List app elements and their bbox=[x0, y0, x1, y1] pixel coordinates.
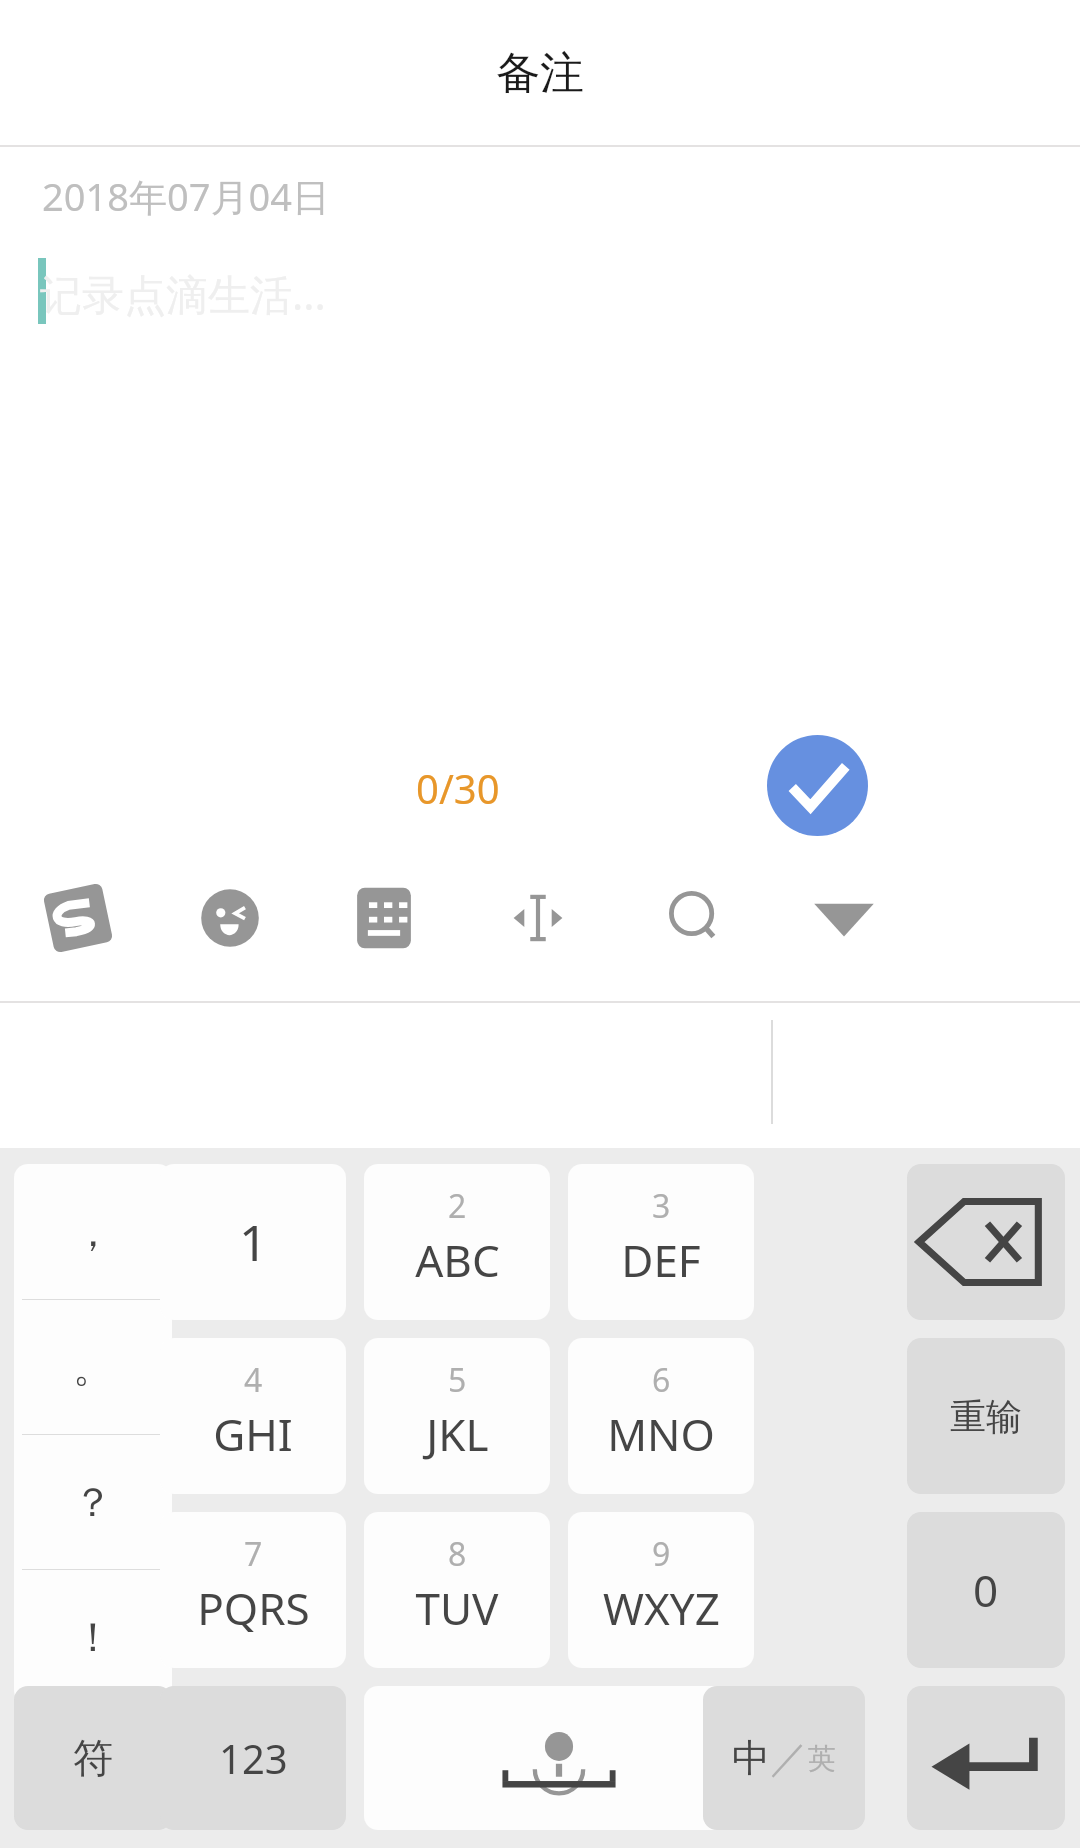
button[interactable]: Punctuation bbox=[14, 1164, 172, 1704]
staticText: 9 bbox=[652, 1532, 671, 1576]
button[interactable]: Space bbox=[364, 1686, 754, 1830]
staticText: JKL bbox=[426, 1404, 489, 1464]
button[interactable]: GHI bbox=[160, 1338, 346, 1494]
staticText: 记录点滴生活... bbox=[40, 265, 326, 322]
button[interactable]: Sogou input bbox=[30, 870, 126, 966]
staticText: 中 bbox=[732, 1734, 770, 1782]
staticText: TUV bbox=[415, 1578, 499, 1638]
staticText: DEF bbox=[621, 1230, 701, 1290]
staticText: ！ bbox=[73, 1612, 113, 1662]
staticText: 符 bbox=[73, 1733, 113, 1783]
staticText: ／ bbox=[770, 1734, 808, 1782]
staticText: 0/30 bbox=[416, 761, 500, 815]
button[interactable]: DEF bbox=[568, 1164, 754, 1320]
button[interactable]: Re-enter bbox=[907, 1338, 1065, 1494]
button[interactable]: Move cursor bbox=[490, 870, 586, 966]
staticText: GHI bbox=[213, 1404, 293, 1464]
staticText: ABC bbox=[415, 1230, 500, 1290]
button[interactable]: MNO bbox=[568, 1338, 754, 1494]
staticText: 7 bbox=[244, 1532, 263, 1576]
staticText: ， bbox=[73, 1207, 113, 1257]
button[interactable]: Search bbox=[646, 870, 742, 966]
button[interactable]: Chinese English bbox=[703, 1686, 865, 1830]
staticText: 。 bbox=[73, 1342, 113, 1392]
button[interactable]: Emoji bbox=[182, 870, 278, 966]
button[interactable]: Confirm bbox=[767, 735, 868, 836]
staticText: WXYZ bbox=[603, 1578, 720, 1638]
button[interactable]: TUV bbox=[364, 1512, 550, 1668]
button[interactable]: Delete bbox=[907, 1164, 1065, 1320]
staticText: 5 bbox=[448, 1358, 467, 1402]
button[interactable]: Hide keyboard bbox=[796, 870, 892, 966]
staticText: 123 bbox=[219, 1731, 288, 1785]
staticText: 0 bbox=[973, 1560, 999, 1620]
staticText: 8 bbox=[448, 1532, 467, 1576]
staticText: 2 bbox=[448, 1184, 467, 1228]
button[interactable]: WXYZ bbox=[568, 1512, 754, 1668]
staticText: 1 bbox=[239, 1208, 268, 1276]
button[interactable]: Enter bbox=[907, 1686, 1065, 1830]
staticText: 4 bbox=[244, 1358, 263, 1402]
button[interactable]: JKL bbox=[364, 1338, 550, 1494]
staticText: 2018年07月04日 bbox=[42, 170, 330, 222]
button[interactable]: ABC bbox=[364, 1164, 550, 1320]
staticText: PQRS bbox=[197, 1578, 310, 1638]
staticText: MNO bbox=[607, 1404, 715, 1464]
button[interactable]: 1 bbox=[160, 1164, 346, 1320]
button[interactable]: Numbers bbox=[160, 1686, 346, 1830]
button[interactable]: Symbols bbox=[14, 1686, 172, 1830]
staticText: 英 bbox=[808, 1741, 836, 1776]
staticText: 6 bbox=[652, 1358, 671, 1402]
button[interactable]: Switch keyboard bbox=[336, 870, 432, 966]
staticText: 重输 bbox=[950, 1394, 1022, 1439]
staticText: 3 bbox=[652, 1184, 671, 1228]
staticText: ？ bbox=[73, 1477, 113, 1527]
button[interactable]: Zero bbox=[907, 1512, 1065, 1668]
button[interactable]: PQRS bbox=[160, 1512, 346, 1668]
staticText: 备注 bbox=[496, 46, 584, 101]
